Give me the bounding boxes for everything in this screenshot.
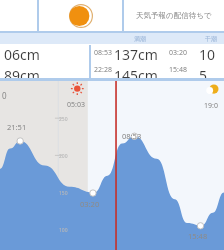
- staticText: 22:28: [94, 65, 112, 75]
- staticText: 03:20: [169, 48, 187, 58]
- staticText: 満潮: [134, 35, 146, 43]
- staticText: 137cm: [114, 45, 158, 64]
- staticText: 03:20: [80, 199, 100, 209]
- staticText: 05:03: [67, 100, 85, 110]
- button[interactable]: 05:03: [0, 81, 224, 250]
- staticText: 15:48: [169, 65, 187, 75]
- staticText: 21:51: [7, 122, 27, 132]
- staticText: 0: [2, 90, 7, 101]
- staticText: 15:48: [188, 231, 208, 241]
- staticText: 100: [59, 227, 68, 234]
- staticText: 08:53: [94, 48, 112, 58]
- staticText: 干潮: [205, 35, 217, 43]
- button[interactable]: Moon phase: [39, 0, 122, 31]
- staticText: 10: [199, 45, 216, 64]
- staticText: 19:0: [204, 101, 218, 111]
- staticText: 08:53: [122, 131, 142, 141]
- staticText: 89cm: [4, 66, 40, 78]
- staticText: 250: [59, 116, 68, 123]
- staticText: 150: [59, 190, 68, 197]
- staticText: 145cm: [114, 66, 158, 78]
- staticText: 200: [59, 153, 68, 160]
- staticText: 天気予報の配信待ちで: [136, 11, 212, 20]
- staticText: 5: [199, 66, 208, 78]
- staticText: 06cm: [4, 45, 40, 64]
